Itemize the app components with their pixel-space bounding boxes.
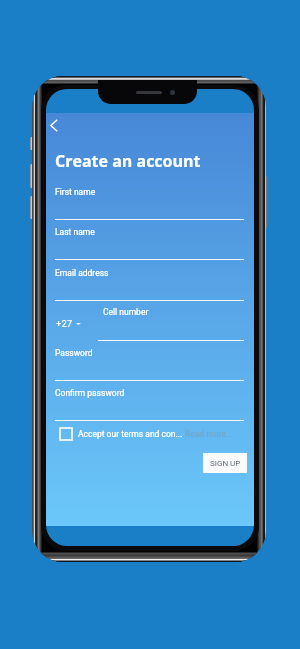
staticText: +27	[56, 318, 73, 329]
staticText: Email address	[55, 268, 109, 278]
staticText: Accept our terms and con...	[78, 429, 183, 439]
button[interactable]: Read more...	[185, 429, 233, 439]
button[interactable]: Back	[46, 115, 64, 135]
button[interactable]: SIGN UP	[203, 453, 247, 473]
staticText: Confirm password	[55, 388, 125, 398]
staticText: Last name	[55, 227, 95, 237]
button[interactable]: Accept terms	[60, 428, 233, 440]
button[interactable]: +27	[56, 318, 81, 329]
other: Accept terms	[60, 428, 72, 440]
staticText: Cell number	[103, 307, 149, 317]
staticText: SIGN UP	[210, 459, 241, 468]
staticText: First name	[55, 187, 96, 197]
staticText: Create an account	[55, 150, 201, 172]
staticText: Password	[55, 348, 93, 358]
